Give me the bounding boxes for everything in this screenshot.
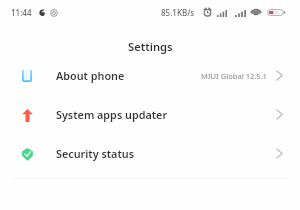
- staticText: About phone: [56, 68, 125, 83]
- staticText: 11:44: [11, 7, 32, 18]
- staticText: System apps updater: [56, 107, 168, 122]
- staticText: MIUI Global 12.5.1: [201, 71, 267, 81]
- button[interactable]: About phone: [0, 56, 300, 95]
- button[interactable]: Security status: [0, 134, 300, 173]
- staticText: Security status: [56, 146, 135, 161]
- button[interactable]: System apps updater: [0, 95, 300, 134]
- staticText: Settings: [128, 39, 173, 54]
- staticText: 85.1KB/s: [161, 7, 195, 18]
